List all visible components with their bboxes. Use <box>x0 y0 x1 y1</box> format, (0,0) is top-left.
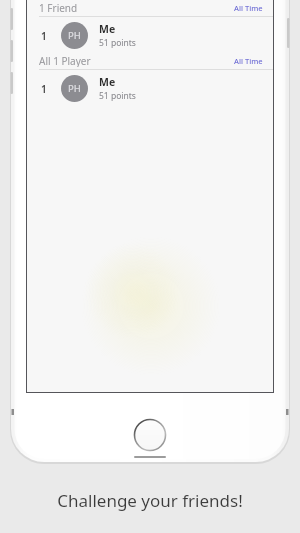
button[interactable]: 1 <box>27 70 273 107</box>
staticText: PH <box>68 29 81 42</box>
staticText: 1 <box>41 29 47 43</box>
staticText: 51 points <box>99 90 136 102</box>
staticText: 51 points <box>99 37 136 49</box>
staticText: Me <box>99 22 116 36</box>
button[interactable]: 1 Friend <box>27 1 273 14</box>
staticText: Challenge your friends! <box>0 489 300 512</box>
staticText: All Time <box>234 3 263 13</box>
button[interactable]: 1 <box>27 17 273 54</box>
staticText: All 1 Player <box>39 54 91 67</box>
staticText: 1 <box>41 82 47 96</box>
staticText: 1 Friend <box>39 1 78 14</box>
button[interactable]: All 1 Player <box>27 54 273 67</box>
button[interactable]: Home <box>133 418 167 452</box>
staticText: All Time <box>234 56 263 66</box>
staticText: PH <box>68 82 81 95</box>
staticText: Me <box>99 75 116 89</box>
